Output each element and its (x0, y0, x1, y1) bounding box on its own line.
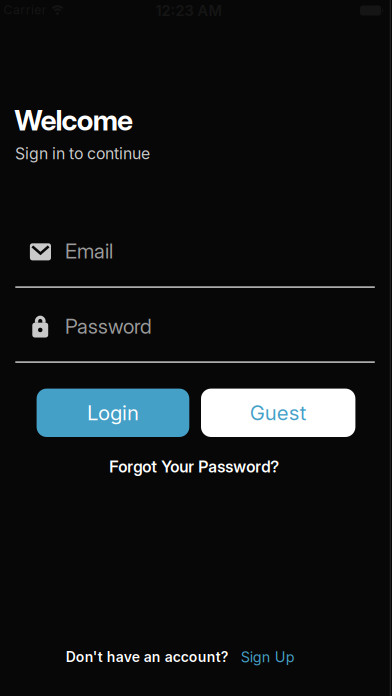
staticText: Sign in to continue (15, 144, 150, 163)
button[interactable]: Password (15, 315, 377, 375)
staticText: Email (65, 238, 113, 263)
staticText: Carrier (4, 2, 47, 17)
button[interactable]: Login (37, 389, 189, 437)
button[interactable]: Email (15, 243, 377, 303)
button[interactable]: Guest (201, 389, 355, 437)
staticText: Welcome (14, 103, 133, 137)
staticText: Login (87, 400, 139, 425)
button[interactable]: Forgot Your Password? (109, 457, 279, 476)
staticText: 12:23 AM (156, 2, 222, 20)
staticText: Don't have an account? (66, 648, 229, 665)
staticText: Sign Up (241, 648, 295, 666)
staticText: Guest (250, 400, 307, 425)
staticText: Password (65, 314, 152, 339)
staticText: Forgot Your Password? (109, 457, 279, 476)
button[interactable]: Sign Up (241, 648, 295, 666)
